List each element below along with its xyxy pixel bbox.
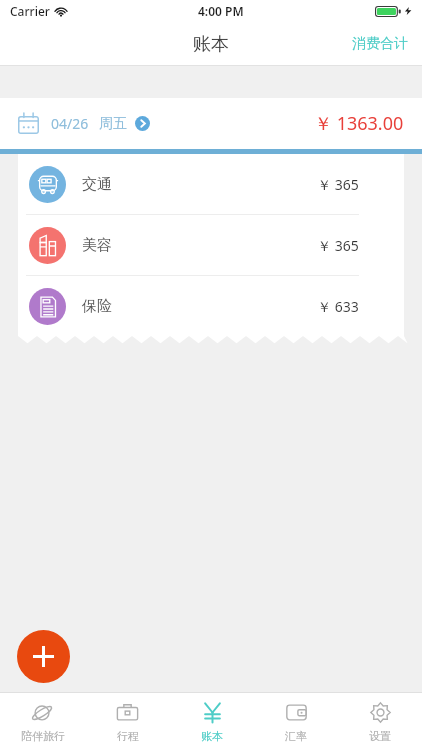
staticText: ￥ 633 xyxy=(317,297,359,316)
staticText: 行程 xyxy=(117,729,139,743)
staticText: 账本 xyxy=(201,729,223,743)
staticText: 保险 xyxy=(82,297,112,316)
button[interactable]: Add record xyxy=(17,630,70,683)
staticText: 汇率 xyxy=(285,729,307,743)
button[interactable]: 汇率 xyxy=(254,693,338,750)
staticText: 交通 xyxy=(82,175,112,194)
staticText: ￥ 365 xyxy=(317,236,359,255)
staticText: 设置 xyxy=(369,729,391,743)
staticText: Carrier xyxy=(10,3,50,19)
button[interactable]: 美容 xyxy=(18,215,404,275)
staticText: 4:00 PM xyxy=(198,3,244,19)
staticText: 消费合计 xyxy=(352,35,408,53)
staticText: ￥ 1363.00 xyxy=(314,111,404,136)
button[interactable]: 设置 xyxy=(338,693,422,750)
button[interactable]: 陪伴旅行 xyxy=(0,693,85,750)
staticText: 账本 xyxy=(193,33,229,56)
staticText: 04/26 xyxy=(51,114,89,133)
button[interactable]: 行程 xyxy=(85,693,170,750)
staticText: 周五 xyxy=(99,115,127,133)
button[interactable]: 交通 xyxy=(18,154,404,214)
button[interactable]: 04/26 xyxy=(0,98,422,149)
staticText: 陪伴旅行 xyxy=(21,729,65,743)
button[interactable]: 消费合计 xyxy=(338,22,422,66)
staticText: 美容 xyxy=(82,236,112,255)
button[interactable]: 保险 xyxy=(18,276,404,336)
button[interactable]: 账本 xyxy=(170,693,254,750)
staticText: ￥ 365 xyxy=(317,175,359,194)
other: Next day xyxy=(135,116,150,131)
